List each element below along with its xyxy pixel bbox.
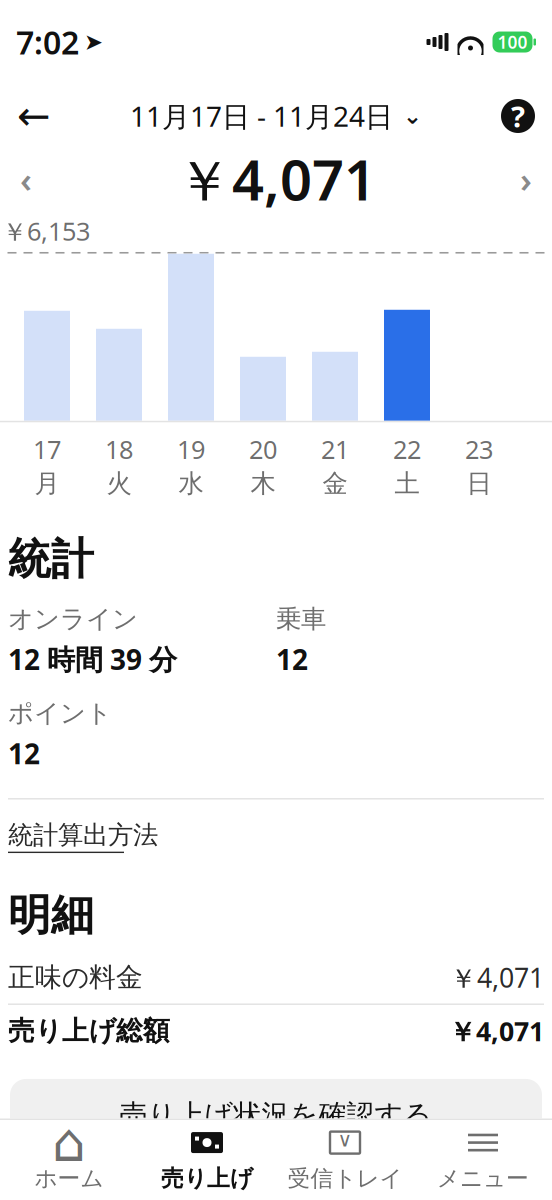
- staticText: 20: [249, 432, 277, 466]
- staticText: 土: [394, 468, 419, 499]
- button[interactable]: 20日 木: [240, 254, 286, 421]
- staticText: ?: [511, 96, 525, 135]
- button[interactable]: メニュー: [414, 1120, 552, 1200]
- button[interactable]: ヘルプ: [492, 90, 544, 142]
- staticText: ￥4,071: [176, 142, 376, 216]
- button[interactable]: 21日 金: [312, 254, 358, 421]
- staticText: 木: [250, 468, 275, 499]
- staticText: 統計: [8, 533, 94, 585]
- staticText: 19: [177, 432, 205, 466]
- staticText: 11月17日 - 11月24日: [130, 97, 393, 135]
- button[interactable]: 17日 月: [24, 254, 70, 421]
- staticText: ⌄: [403, 103, 422, 129]
- button[interactable]: 統計算出方法: [8, 819, 158, 853]
- staticText: 受信トレイ: [287, 1165, 402, 1192]
- staticText: ポイント: [8, 698, 112, 729]
- staticText: 売り上げ総額: [8, 1015, 170, 1047]
- button[interactable]: 次の期間: [504, 152, 548, 206]
- staticText: 21: [321, 432, 349, 466]
- staticText: ￥4,071: [450, 960, 544, 995]
- staticText: 乗車: [276, 603, 326, 634]
- button[interactable]: 戻る: [8, 90, 60, 142]
- staticText: 12: [276, 641, 308, 678]
- staticText: 売り上げ: [161, 1165, 253, 1192]
- staticText: 22: [393, 432, 421, 466]
- staticText: ￥4,071: [449, 1013, 544, 1049]
- staticText: 12: [8, 735, 40, 772]
- button[interactable]: 11月17日 - 11月24日: [124, 90, 428, 142]
- staticText: 23: [465, 432, 493, 466]
- staticText: 水: [178, 468, 203, 499]
- staticText: ∨: [337, 1128, 352, 1151]
- staticText: ￥6,153: [2, 214, 90, 248]
- staticText: ←: [17, 93, 51, 139]
- staticText: 100: [497, 30, 527, 53]
- staticText: 正味の料金: [8, 961, 143, 994]
- staticText: 明細: [8, 889, 94, 941]
- staticText: メニュー: [437, 1165, 529, 1192]
- staticText: 17: [33, 432, 61, 466]
- button[interactable]: ⌂: [0, 1120, 138, 1200]
- staticText: ‹: [20, 156, 32, 202]
- staticText: 火: [106, 468, 131, 499]
- staticText: 12 時間 39 分: [8, 641, 177, 678]
- staticText: ›: [520, 156, 532, 202]
- staticText: ➤: [84, 29, 103, 55]
- staticText: ⌂: [52, 1112, 86, 1173]
- staticText: オンライン: [8, 603, 138, 634]
- button[interactable]: 前の期間: [4, 152, 48, 206]
- button[interactable]: 22日 土: [384, 254, 430, 421]
- staticText: 月: [34, 468, 59, 499]
- staticText: 日: [466, 468, 491, 499]
- staticText: 7:02: [16, 21, 79, 63]
- staticText: 18: [105, 432, 133, 466]
- button[interactable]: 売り上げ: [138, 1120, 276, 1200]
- staticText: 統計算出方法: [8, 819, 158, 851]
- button[interactable]: 売り上げ状況を確認する: [10, 1079, 542, 1151]
- staticText: ホーム: [34, 1165, 103, 1192]
- button[interactable]: ∨: [276, 1120, 414, 1200]
- staticText: 金: [322, 468, 347, 499]
- button[interactable]: 18日 火: [96, 254, 142, 421]
- staticText: 売り上げ状況を確認する: [119, 1098, 432, 1132]
